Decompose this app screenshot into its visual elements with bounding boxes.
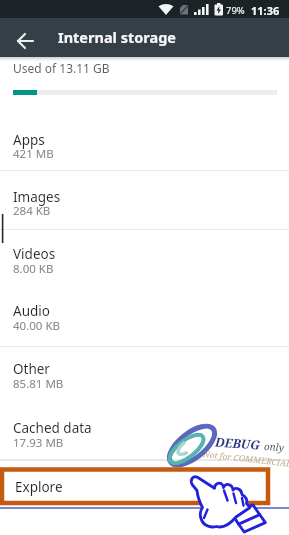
staticText: Images	[13, 188, 61, 206]
staticText: 17.93 MB	[13, 435, 64, 451]
button[interactable]: Apps	[0, 113, 289, 171]
button[interactable]: Explore	[0, 461, 289, 507]
button[interactable]: Cached data	[0, 405, 289, 460]
staticText: Audio	[13, 302, 50, 320]
button[interactable]: Videos	[0, 230, 289, 289]
button[interactable]	[8, 31, 42, 51]
staticText: 79%	[226, 4, 245, 17]
staticText: 40.00 KB	[13, 318, 60, 334]
staticText: only	[263, 439, 285, 454]
staticText: DEBUG	[214, 434, 262, 454]
staticText: Cached data	[13, 419, 92, 437]
staticText: 11:36	[251, 3, 280, 18]
staticText: Used of 13.11 GB	[13, 60, 110, 76]
staticText: Apps	[13, 131, 45, 149]
staticText: 8.00 KB	[13, 261, 54, 277]
staticText: Videos	[13, 245, 56, 263]
button[interactable]: Audio	[0, 288, 289, 347]
staticText: 421 MB	[13, 146, 54, 162]
staticText: 284 KB	[13, 203, 51, 219]
staticText: Other	[13, 360, 50, 378]
button[interactable]: Other	[0, 347, 289, 406]
staticText: Not for COMMERCIAL	[203, 448, 289, 470]
staticText: Explore	[15, 478, 63, 496]
staticText: 85.81 MB	[13, 376, 64, 392]
button[interactable]: Images	[0, 171, 289, 230]
staticText: Internal storage	[58, 27, 177, 47]
